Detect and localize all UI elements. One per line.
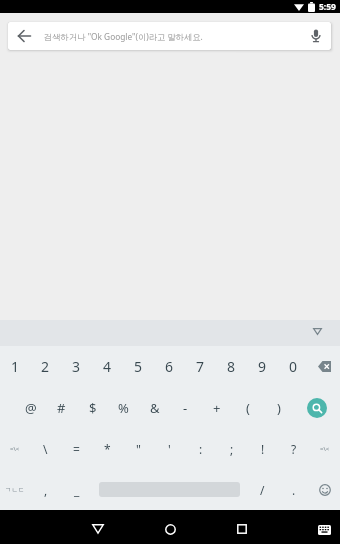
button[interactable] <box>309 346 340 387</box>
button[interactable] <box>316 523 332 537</box>
staticText: \ <box>43 441 48 457</box>
staticText: ' <box>168 441 171 457</box>
button[interactable]: & <box>139 387 170 428</box>
button[interactable]: ( <box>232 387 263 428</box>
staticText: @ <box>25 399 37 417</box>
button[interactable]: , <box>30 469 61 510</box>
staticText: " <box>136 441 141 457</box>
button[interactable] <box>18 30 31 42</box>
button[interactable]: $ <box>77 387 108 428</box>
staticText: : <box>199 441 203 457</box>
staticText: 7 <box>196 357 205 376</box>
staticText: $ <box>89 399 97 417</box>
button[interactable]: 검색하거나 "Ok Google"(이)라고 말하세요. <box>8 22 331 50</box>
button[interactable] <box>310 29 322 43</box>
staticText: - <box>183 399 188 417</box>
staticText: 2 <box>41 357 50 376</box>
button[interactable]: = <box>61 428 92 469</box>
button[interactable]: 4 <box>92 346 123 387</box>
button[interactable]: " <box>123 428 154 469</box>
button[interactable]: * <box>92 428 123 469</box>
staticText: ; <box>230 441 234 457</box>
staticText: 8 <box>227 357 236 376</box>
button[interactable]: 7 <box>185 346 216 387</box>
staticText: , <box>44 482 48 498</box>
button[interactable]: 3 <box>61 346 92 387</box>
staticText: 3 <box>72 357 81 376</box>
staticText: 6 <box>165 357 174 376</box>
button[interactable] <box>92 469 247 510</box>
staticText: ? <box>291 441 297 457</box>
button[interactable]: % <box>108 387 139 428</box>
staticText: 0 <box>289 357 298 376</box>
staticText: =\< <box>10 445 20 453</box>
button[interactable]: . <box>278 469 309 510</box>
button[interactable]: 8 <box>216 346 247 387</box>
staticText: = <box>73 441 80 457</box>
button[interactable]: _ <box>61 469 92 510</box>
staticText: ! <box>261 441 265 457</box>
button[interactable]: / <box>247 469 278 510</box>
staticText: % <box>118 399 129 417</box>
button[interactable]: @ <box>15 387 46 428</box>
button[interactable]: 1 <box>0 346 30 387</box>
button[interactable]: 0 <box>278 346 309 387</box>
button[interactable]: ' <box>154 428 185 469</box>
button[interactable]: - <box>170 387 201 428</box>
button[interactable]: : <box>185 428 216 469</box>
staticText: & <box>150 399 160 417</box>
staticText: * <box>104 441 111 457</box>
staticText: _ <box>74 482 80 498</box>
button[interactable]: =\< <box>309 428 340 469</box>
staticText: =\< <box>320 445 330 453</box>
staticText: ( <box>246 399 250 417</box>
button[interactable]: ) <box>263 387 294 428</box>
button[interactable] <box>313 328 322 335</box>
staticText: ㄱㄴㄷ <box>5 486 25 494</box>
button[interactable]: \ <box>30 428 61 469</box>
button[interactable]: ; <box>216 428 247 469</box>
button[interactable]: ! <box>247 428 278 469</box>
staticText: . <box>292 482 296 498</box>
staticText: 5:59 <box>319 1 336 13</box>
button[interactable]: + <box>201 387 232 428</box>
button[interactable] <box>62 512 134 544</box>
button[interactable]: 6 <box>154 346 185 387</box>
button[interactable]: 5 <box>123 346 154 387</box>
button[interactable] <box>134 512 206 544</box>
button[interactable] <box>294 387 340 428</box>
staticText: 4 <box>103 357 112 376</box>
staticText: + <box>213 399 221 417</box>
staticText: 5 <box>134 357 143 376</box>
staticText: 9 <box>258 357 267 376</box>
staticText: 검색하거나 "Ok Google"(이)라고 말하세요. <box>44 31 203 42</box>
staticText: # <box>57 399 66 417</box>
staticText: ) <box>277 399 281 417</box>
button[interactable]: ㄱㄴㄷ <box>0 469 30 510</box>
staticText: / <box>260 482 265 498</box>
button[interactable]: ? <box>278 428 309 469</box>
button[interactable]: 2 <box>30 346 61 387</box>
staticText: 1 <box>11 357 20 376</box>
button[interactable]: =\< <box>0 428 30 469</box>
button[interactable]: 9 <box>247 346 278 387</box>
button[interactable] <box>206 512 278 544</box>
button[interactable]: # <box>46 387 77 428</box>
button[interactable] <box>309 469 340 510</box>
